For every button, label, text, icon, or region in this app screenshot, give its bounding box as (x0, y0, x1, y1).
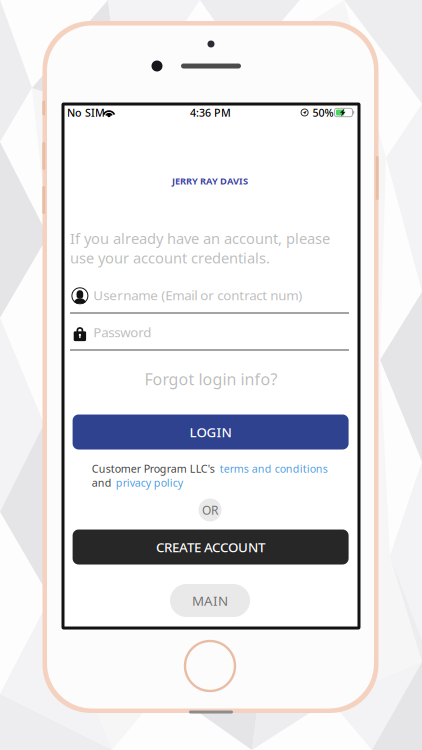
staticText: privacy policy (116, 475, 183, 490)
button[interactable]: LOGIN (73, 414, 349, 449)
staticText: Username (Email or contract num) (93, 286, 302, 304)
staticText: 4:36 PM (190, 105, 231, 120)
button[interactable]: Forgot login info? (131, 367, 291, 391)
button[interactable]: MAIN (170, 584, 250, 617)
staticText: LOGIN (190, 423, 232, 441)
button[interactable]: CREATE ACCOUNT (73, 529, 349, 564)
staticText: terms and conditions (220, 461, 328, 476)
staticText: and (92, 475, 112, 490)
staticText: JERRY RAY DAVIS (172, 175, 248, 187)
staticText: Forgot login info? (144, 368, 277, 390)
staticText: 50% (313, 105, 334, 120)
staticText: Password (93, 323, 151, 341)
button[interactable]: privacy policy (116, 476, 188, 488)
staticText: CREATE ACCOUNT (156, 538, 265, 556)
staticText: If you already have an account, please u… (70, 228, 330, 267)
staticText: OR (202, 502, 218, 518)
staticText: MAIN (192, 592, 228, 609)
staticText: Customer Program LLC's (92, 461, 215, 476)
staticText: No SIM (67, 105, 105, 120)
button[interactable]: terms and conditions (220, 462, 330, 474)
